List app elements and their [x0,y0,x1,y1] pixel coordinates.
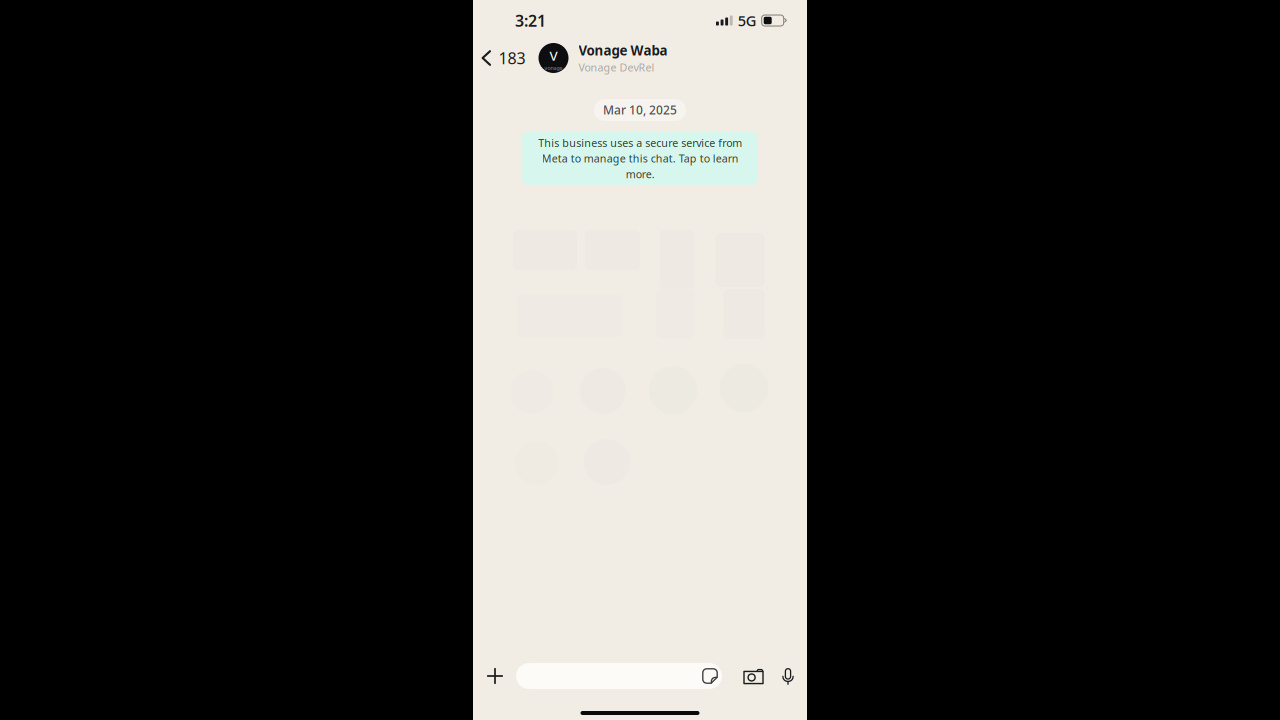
staticText: 3:21 [515,10,546,31]
staticText: 5G [738,11,757,30]
button[interactable]: Attach [474,654,516,698]
staticText: Mar 10, 2025 [603,102,677,118]
button[interactable]: Back to 183 chats [473,38,533,78]
button[interactable]: Camera [743,654,764,698]
staticText: 183 [498,47,525,69]
staticText: This business uses a secure service from… [538,136,742,181]
button[interactable]: Stickers [698,663,722,689]
button[interactable]: Voice message [781,654,795,698]
button[interactable]: V [533,38,807,78]
button[interactable]: This business uses a secure service from… [522,132,758,185]
staticText: Vonage Waba [578,42,667,59]
staticText: Vonage DevRel [578,60,654,74]
staticText: V [549,47,557,64]
staticText: vonage [544,64,562,71]
